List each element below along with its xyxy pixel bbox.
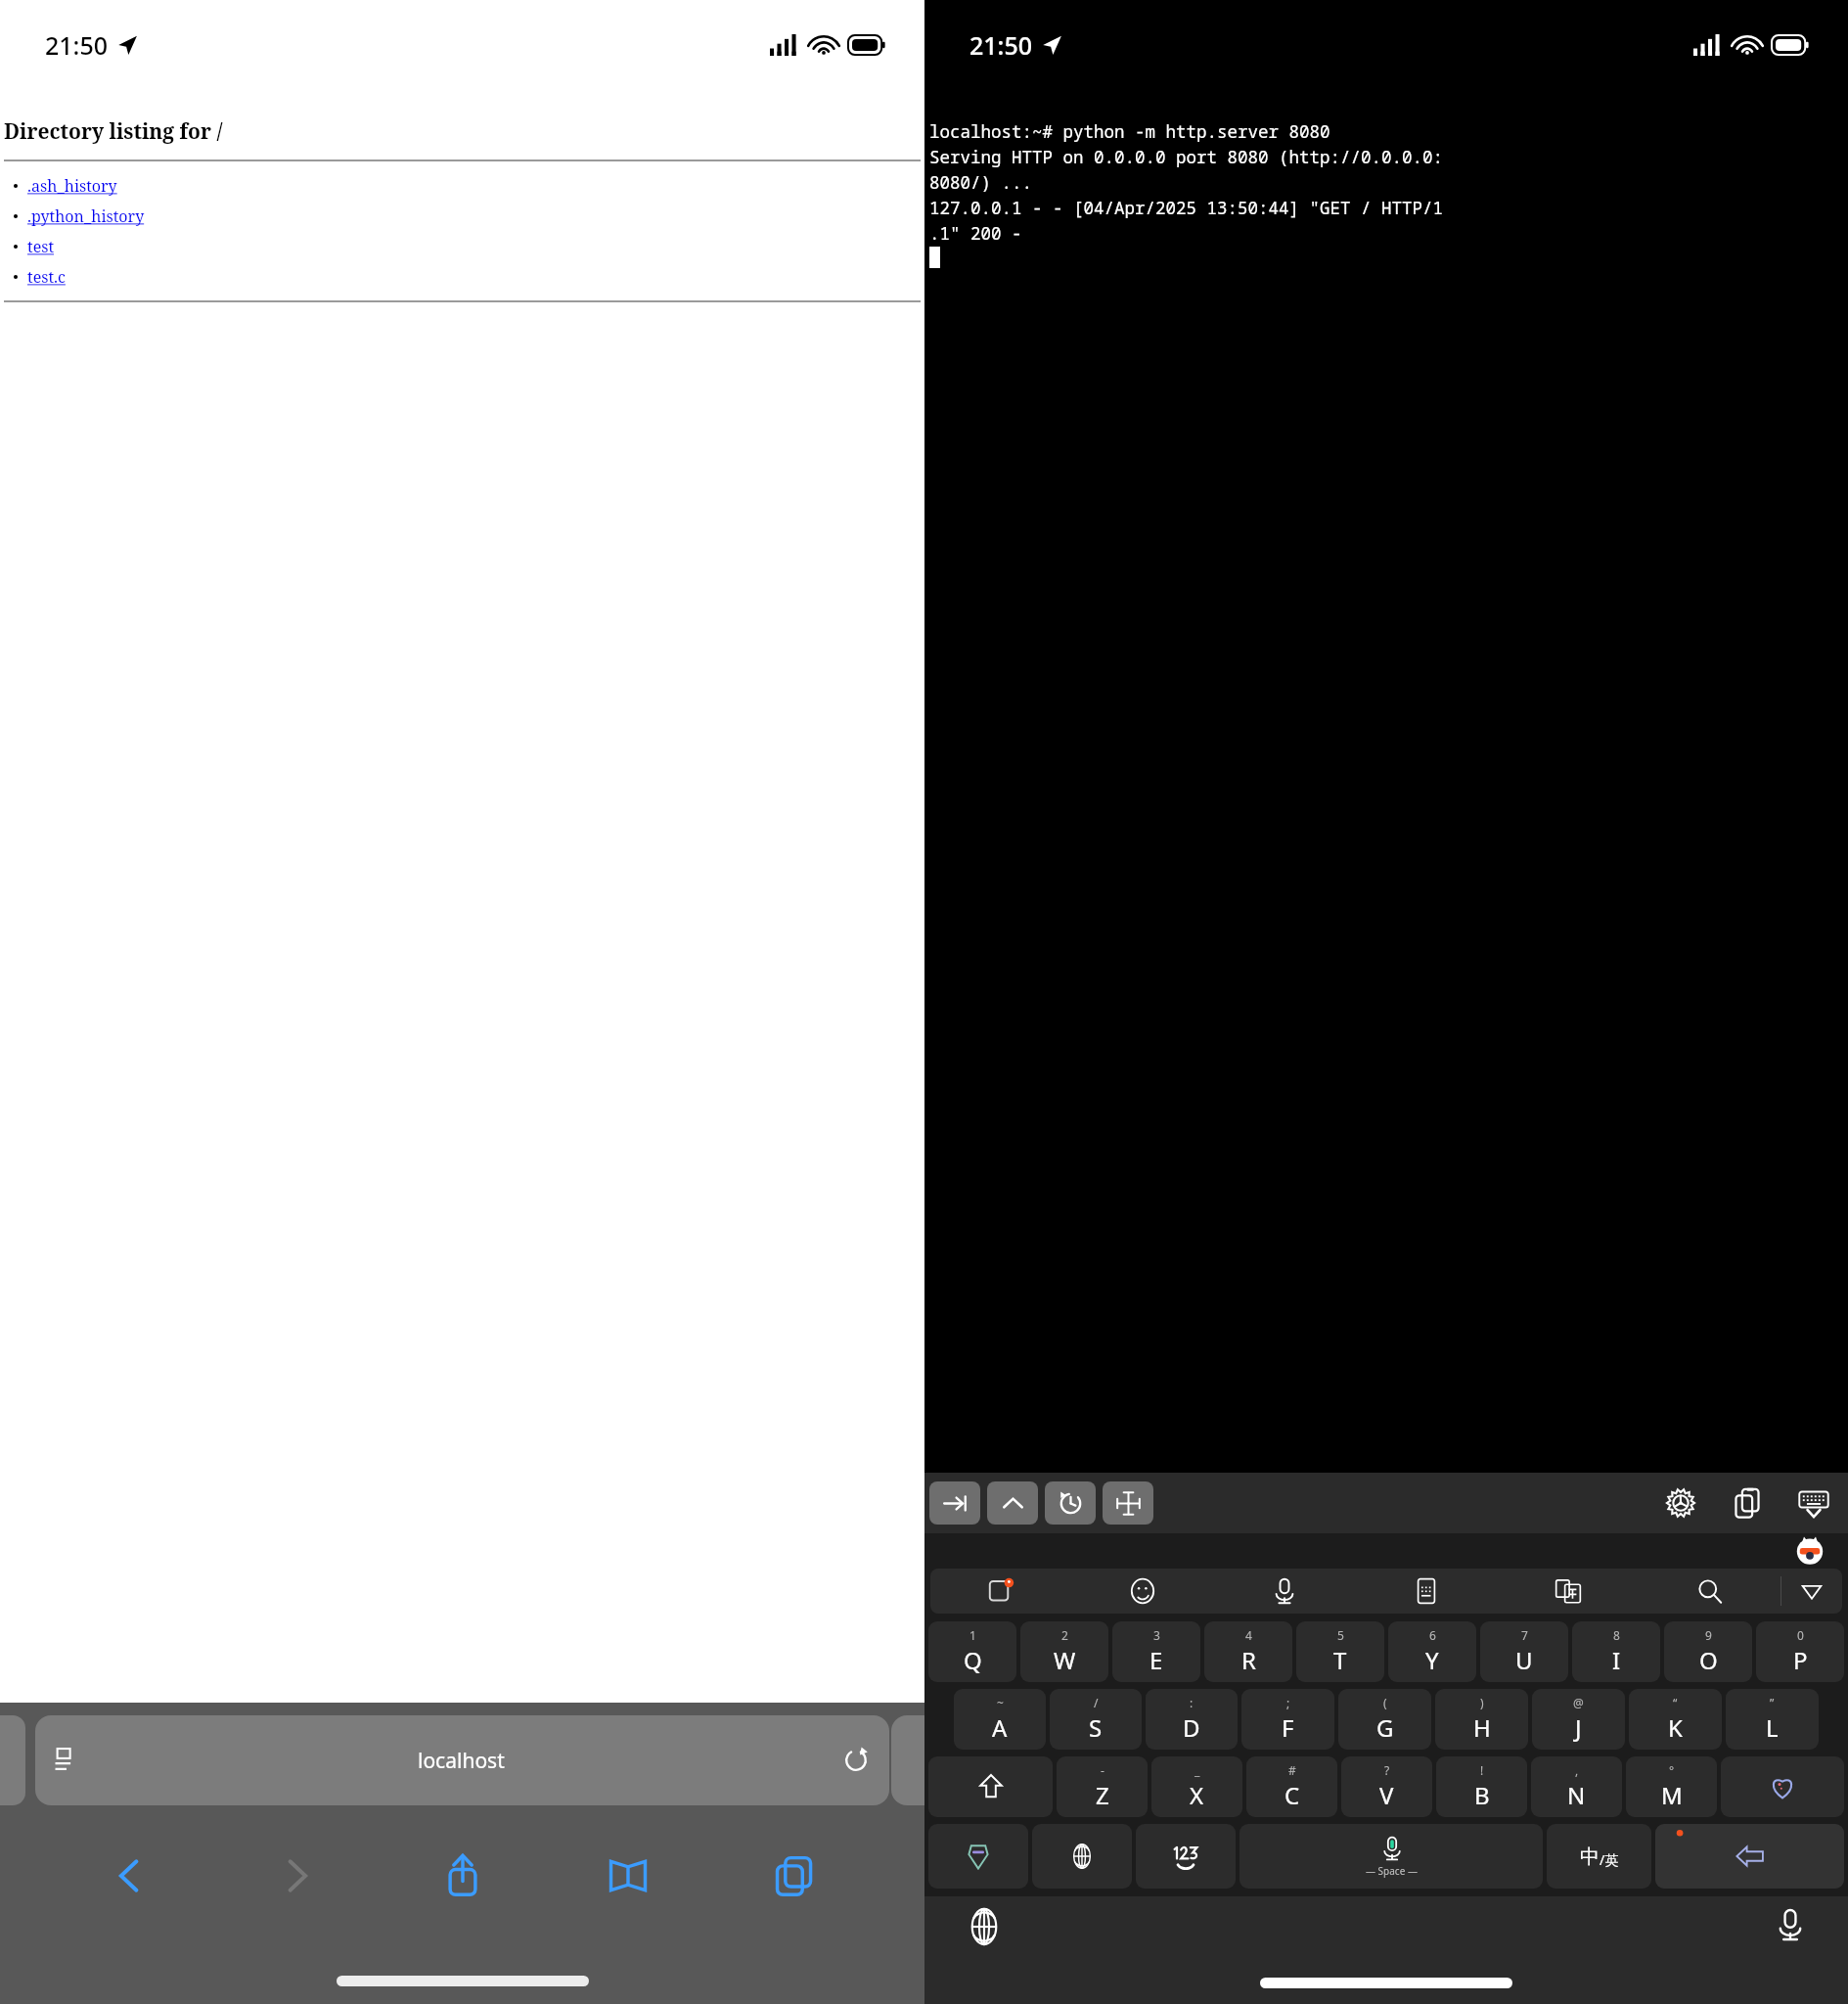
button[interactable]: 5 (1296, 1621, 1384, 1682)
button[interactable]: - (1057, 1756, 1148, 1817)
staticText: - (1101, 1762, 1104, 1778)
staticText: test.c (27, 266, 66, 288)
button[interactable]: Search (1639, 1569, 1780, 1614)
staticText: K (1668, 1711, 1683, 1744)
button[interactable]: Voice input (1213, 1569, 1355, 1614)
staticText: .1" 200 - (929, 221, 1022, 245)
button[interactable]: .python_history (0, 205, 924, 227)
button[interactable]: Input method (930, 1569, 1071, 1614)
staticText: ( (1383, 1695, 1387, 1710)
staticText: 5 (1337, 1627, 1344, 1643)
button[interactable]: # (1246, 1756, 1337, 1817)
staticText: _ (1194, 1762, 1200, 1778)
button[interactable]: Collapse (1781, 1569, 1842, 1614)
staticText: ” (1770, 1695, 1775, 1710)
button[interactable]: Keypad (1355, 1569, 1497, 1614)
button[interactable]: “ (1629, 1689, 1722, 1750)
staticText: X (1190, 1779, 1204, 1811)
button[interactable]: @ (1532, 1689, 1625, 1750)
button[interactable]: ? (1341, 1756, 1432, 1817)
button[interactable]: 9 (1664, 1621, 1752, 1682)
button[interactable]: Emoji (1071, 1569, 1213, 1614)
staticText: ° (1669, 1762, 1675, 1778)
button[interactable]: test.c (0, 266, 924, 288)
staticText: O (1699, 1644, 1718, 1676)
button[interactable]: / (1050, 1689, 1142, 1750)
button[interactable]: Back (94, 1840, 166, 1912)
staticText: Directory listing for / (4, 117, 223, 146)
button[interactable]: Chinese English (1547, 1824, 1651, 1889)
button[interactable]: Handwriting (928, 1824, 1028, 1889)
button[interactable]: Control (987, 1481, 1038, 1525)
button[interactable]: Bookmarks (592, 1840, 664, 1912)
staticText: H (1473, 1711, 1491, 1744)
button[interactable]: 3 (1112, 1621, 1200, 1682)
staticText: : (1190, 1695, 1194, 1710)
button[interactable]: Tabs (758, 1840, 831, 1912)
button[interactable]: — Space — (1240, 1824, 1543, 1889)
button[interactable]: 2 (1020, 1621, 1108, 1682)
staticText: — Space — (1366, 1864, 1418, 1878)
button[interactable]: Language (1032, 1824, 1132, 1889)
staticText: ? (1384, 1762, 1390, 1778)
button[interactable]: 4 (1204, 1621, 1292, 1682)
staticText: “ (1673, 1695, 1678, 1710)
button[interactable]: Translate (1497, 1569, 1639, 1614)
button[interactable]: , (1531, 1756, 1622, 1817)
button[interactable]: History (1045, 1481, 1096, 1525)
staticText: Q (964, 1644, 982, 1676)
button[interactable]: Hide keyboard (1791, 1480, 1836, 1526)
staticText: 3 (1153, 1627, 1160, 1643)
staticText: localhost (418, 1747, 505, 1775)
button[interactable]: Page settings (35, 1715, 889, 1805)
button[interactable]: ) (1435, 1689, 1528, 1750)
button[interactable]: 7 (1480, 1621, 1568, 1682)
button[interactable]: 1 (928, 1621, 1016, 1682)
staticText: C (1285, 1779, 1300, 1811)
staticText: .ash_history (27, 175, 117, 197)
button[interactable]: Forward (260, 1840, 333, 1912)
button[interactable]: Switch keyboard (966, 1908, 1003, 1945)
staticText: @ (1573, 1695, 1584, 1710)
other: Assistant (1795, 1536, 1825, 1566)
button[interactable]: ° (1626, 1756, 1717, 1817)
button[interactable]: ; (1241, 1689, 1334, 1750)
button[interactable]: Settings (1658, 1480, 1703, 1526)
staticText: 21:50 (969, 28, 1033, 62)
button[interactable]: Numbers (1136, 1824, 1236, 1889)
staticText: R (1241, 1644, 1256, 1676)
button[interactable]: Move (1103, 1481, 1153, 1525)
staticText: J (1575, 1711, 1582, 1744)
button[interactable]: _ (1151, 1756, 1242, 1817)
staticText: T (1333, 1644, 1347, 1676)
button[interactable]: Paste (1725, 1480, 1770, 1526)
button[interactable]: Delete (1655, 1824, 1844, 1889)
staticText: W (1054, 1644, 1076, 1676)
button[interactable]: ! (1436, 1756, 1527, 1817)
staticText: V (1379, 1779, 1394, 1811)
staticText: 21:50 (45, 28, 109, 62)
button[interactable]: 6 (1388, 1621, 1476, 1682)
button[interactable]: Share (427, 1840, 499, 1912)
button[interactable]: ( (1338, 1689, 1431, 1750)
staticText: /英 (1600, 1850, 1619, 1869)
staticText: / (1094, 1695, 1099, 1710)
button[interactable]: ” (1726, 1689, 1819, 1750)
button[interactable]: Favorites (1721, 1756, 1844, 1817)
button[interactable]: 8 (1572, 1621, 1660, 1682)
staticText: # (1288, 1762, 1296, 1778)
staticText: U (1515, 1644, 1533, 1676)
button[interactable]: 0 (1756, 1621, 1844, 1682)
staticText: 6 (1429, 1627, 1436, 1643)
button[interactable]: : (1146, 1689, 1238, 1750)
button[interactable]: ~ (954, 1689, 1046, 1750)
button[interactable]: Dictation (1774, 1908, 1807, 1941)
staticText: N (1567, 1779, 1586, 1811)
button[interactable]: Tab (929, 1481, 980, 1525)
staticText: ; (1286, 1695, 1290, 1710)
staticText: 0 (1797, 1627, 1804, 1643)
button[interactable]: .ash_history (0, 175, 924, 197)
button[interactable]: Shift (928, 1756, 1053, 1817)
staticText: 127.0.0.1 - - [04/Apr/2025 13:50:44] "GE… (929, 196, 1443, 219)
button[interactable]: test (0, 236, 924, 257)
